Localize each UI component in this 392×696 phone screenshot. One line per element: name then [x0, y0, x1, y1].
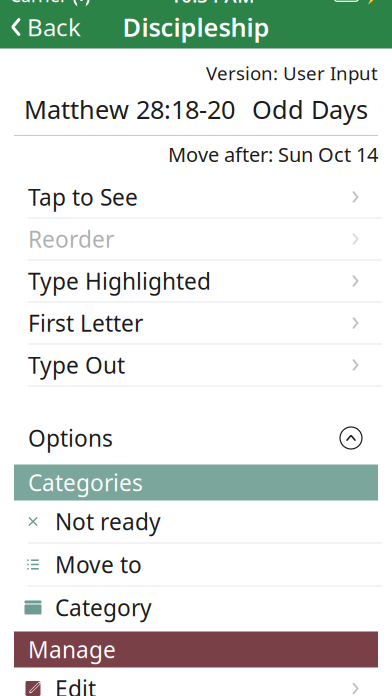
- staticText: Odd Days: [252, 92, 368, 126]
- staticText: Version: User Input: [206, 60, 378, 85]
- staticText: Type Highlighted: [28, 266, 211, 296]
- staticText: Edit: [55, 673, 96, 696]
- staticText: Back: [27, 11, 81, 43]
- button[interactable]: Type Out: [0, 344, 392, 386]
- staticText: Categories: [28, 467, 143, 497]
- button[interactable]: First Letter: [0, 302, 392, 344]
- staticText: 10:34 AM: [170, 0, 254, 8]
- staticText: ⚡: [364, 0, 382, 4]
- button[interactable]: Type Highlighted: [0, 260, 392, 302]
- staticText: Discipleship: [122, 10, 269, 44]
- staticText: Reorder: [28, 224, 114, 254]
- staticText: Matthew 28:18-20: [24, 92, 235, 126]
- staticText: First Letter: [28, 308, 143, 338]
- staticText: Category: [55, 592, 152, 622]
- staticText: Move to: [55, 549, 142, 579]
- button[interactable]: Options: [0, 417, 392, 458]
- staticText: Carrier: [10, 0, 67, 7]
- button[interactable]: Back: [0, 5, 91, 49]
- staticText: Manage: [28, 634, 116, 664]
- button[interactable]: Move to: [0, 543, 392, 586]
- button[interactable]: Not ready: [0, 500, 392, 543]
- button[interactable]: Category: [0, 586, 392, 629]
- button[interactable]: Reorder: [0, 218, 392, 260]
- staticText: Tap to See: [28, 182, 138, 212]
- staticText: Type Out: [28, 350, 125, 380]
- staticText: Move after: Sun Oct 14: [168, 141, 378, 167]
- staticText: Not ready: [55, 506, 161, 536]
- staticText: Options: [28, 423, 113, 453]
- button[interactable]: Edit: [0, 667, 392, 696]
- button[interactable]: Tap to See: [0, 176, 392, 218]
